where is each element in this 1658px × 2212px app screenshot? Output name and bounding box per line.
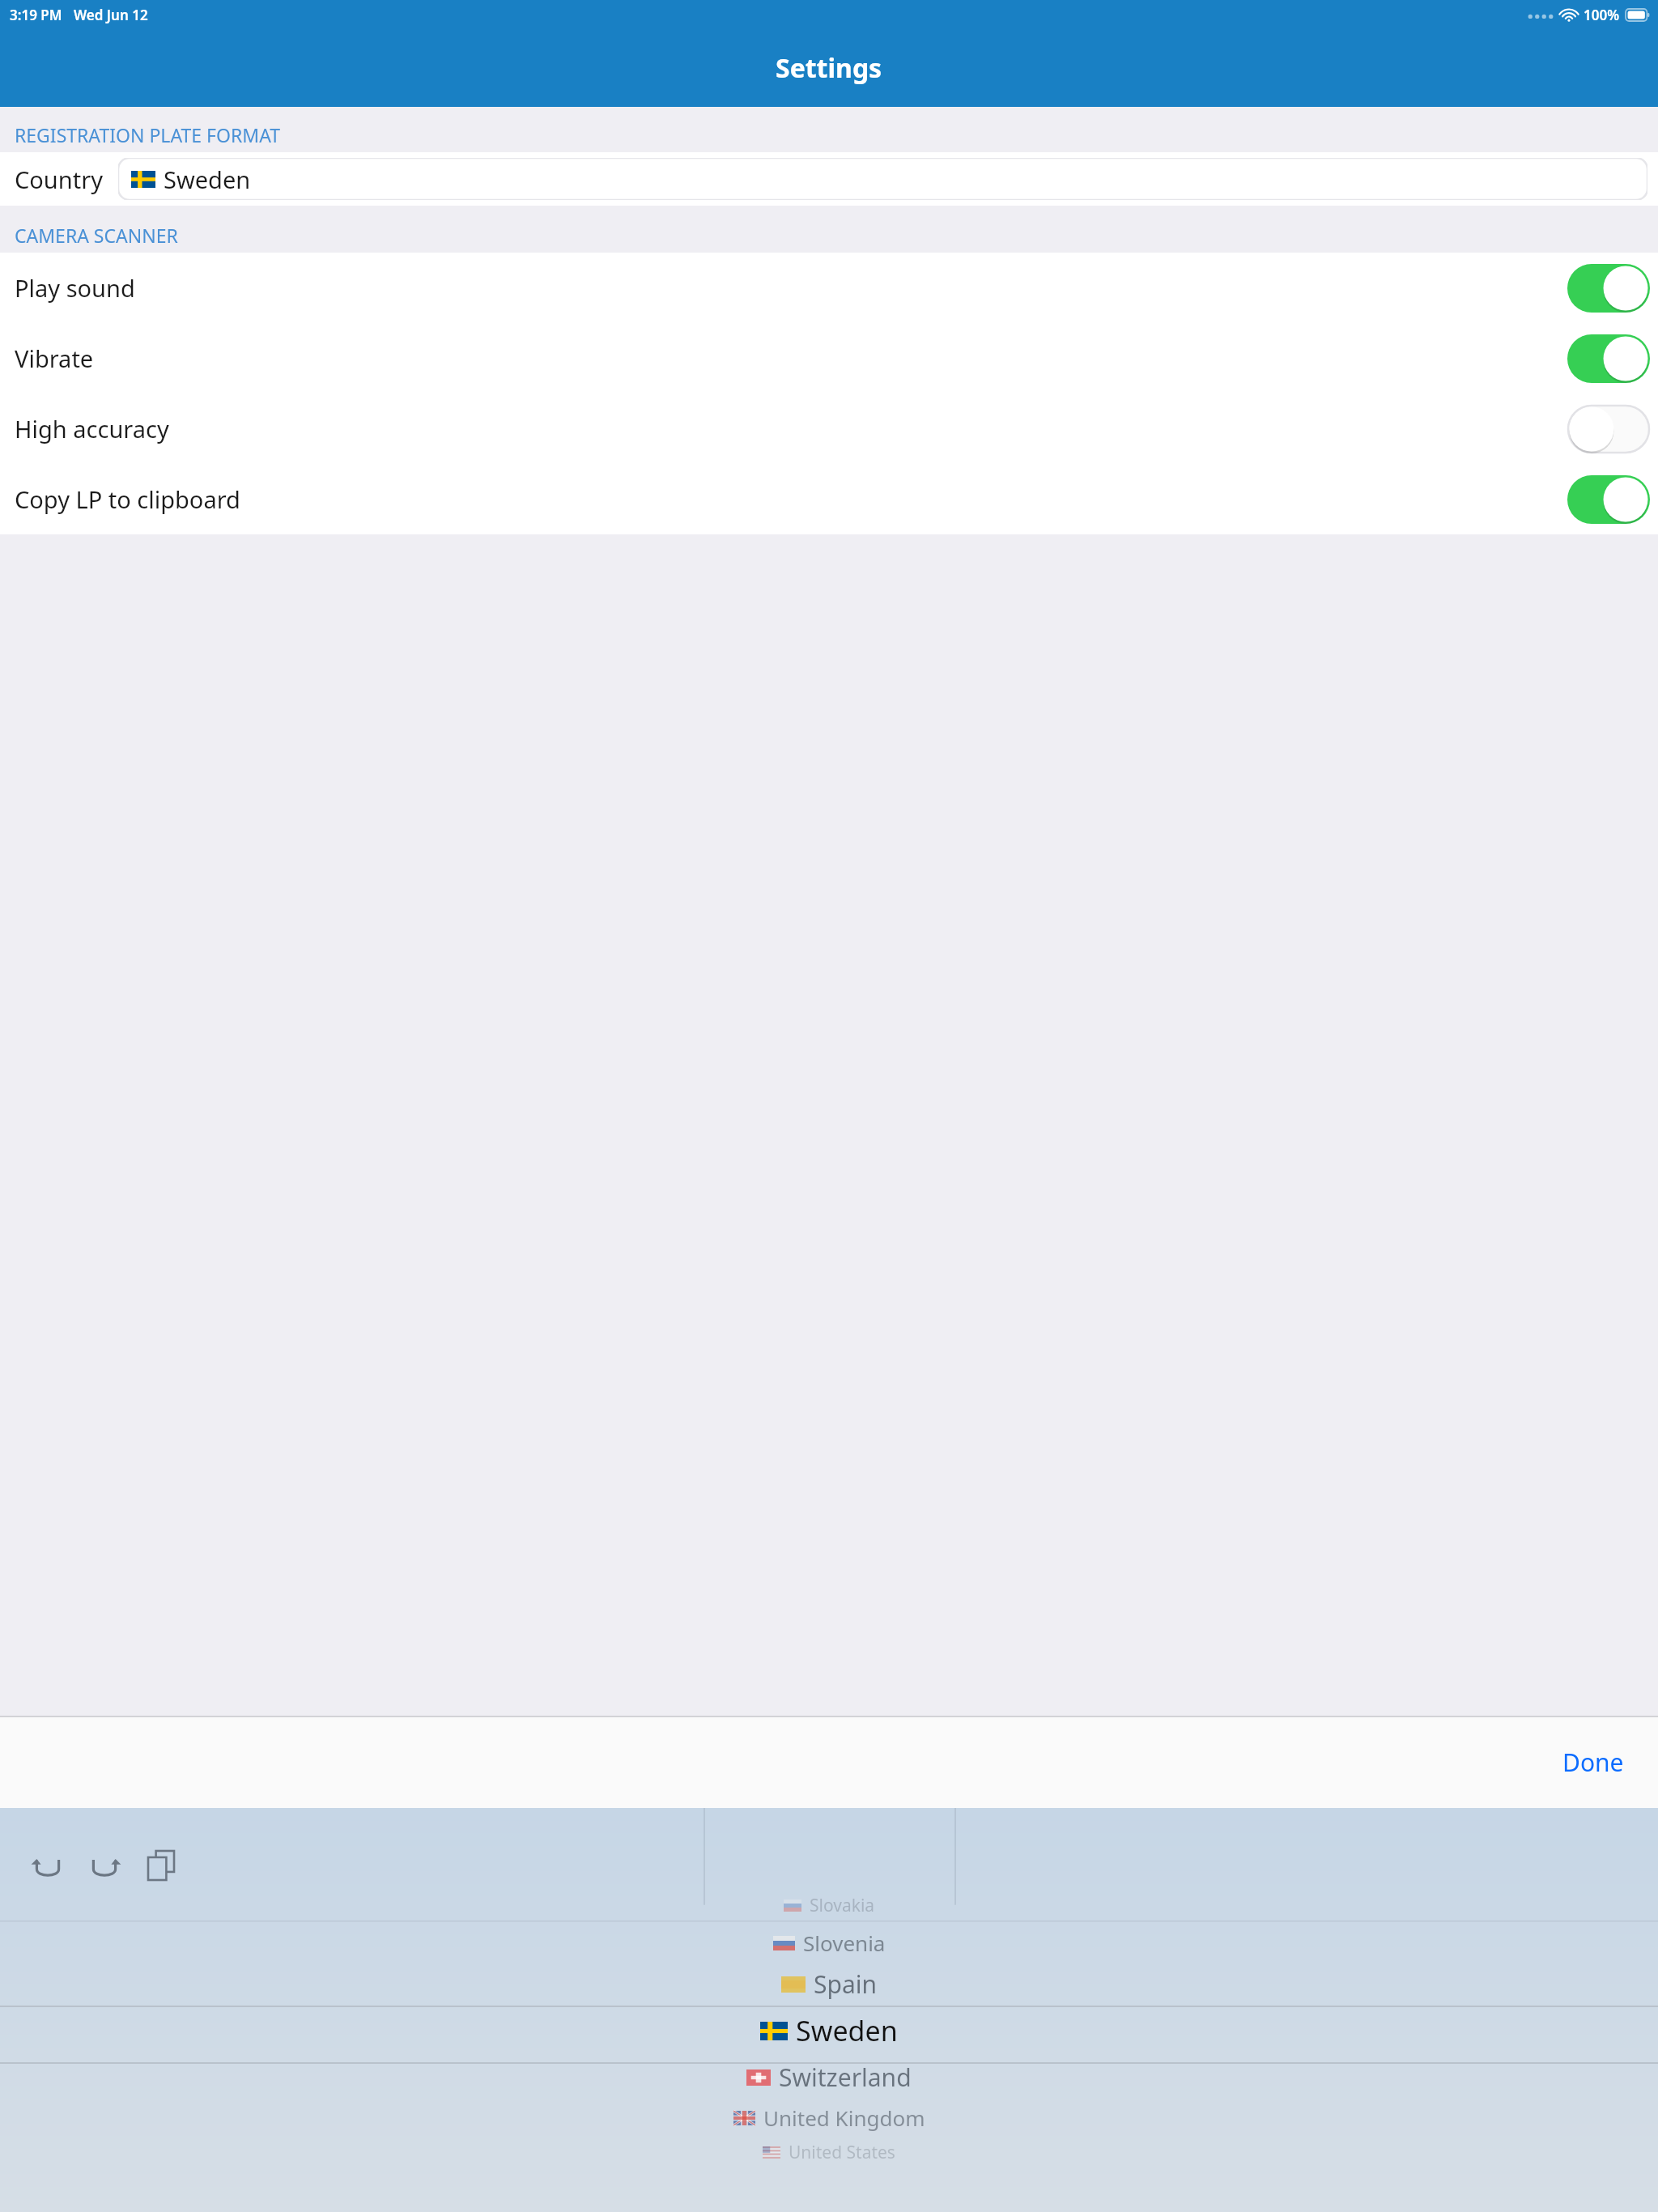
staticText: Slovenia — [803, 1929, 886, 1957]
button[interactable]: Vibrate — [0, 323, 1658, 393]
staticText: Switzerland — [779, 2061, 912, 2094]
staticText: REGISTRATION PLATE FORMAT — [15, 122, 281, 147]
staticText: Slovakia — [810, 1894, 875, 1917]
staticText: Play sound — [15, 272, 1567, 304]
staticText: Copy LP to clipboard — [15, 483, 1567, 515]
button[interactable]: Switzerland — [0, 2061, 1658, 2094]
button[interactable]: Slovenia — [0, 1929, 1658, 1957]
staticText: 100% — [1584, 6, 1620, 24]
button[interactable]: Slovakia — [0, 1894, 1658, 1917]
button[interactable]: Vibrate — [1567, 334, 1650, 383]
staticText: Sweden — [164, 164, 251, 195]
button[interactable]: Done — [1553, 1738, 1634, 1787]
staticText: High accuracy — [15, 413, 1567, 445]
staticText: Wed Jun 12 — [74, 6, 148, 24]
staticText: United States — [789, 2141, 895, 2164]
button[interactable]: High accuracy — [0, 393, 1658, 464]
staticText: Sweden — [796, 2012, 898, 2049]
button[interactable]: High accuracy — [1567, 405, 1650, 453]
button[interactable]: Sweden — [118, 158, 1647, 200]
button[interactable]: Copy LP to clipboard — [0, 464, 1658, 534]
button[interactable]: Copy LP to clipboard — [1567, 475, 1650, 524]
staticText: CAMERA SCANNER — [15, 223, 178, 248]
button[interactable]: United States — [0, 2141, 1658, 2164]
staticText: Vibrate — [15, 342, 1567, 374]
staticText: United Kingdom — [763, 2104, 925, 2132]
button[interactable]: Redo — [79, 1840, 130, 1891]
staticText: Spain — [814, 1967, 878, 2001]
staticText: 3:19 PM — [10, 6, 62, 24]
staticText: Settings — [776, 50, 882, 86]
button[interactable]: Paste — [136, 1840, 186, 1891]
button[interactable]: Play sound — [1567, 264, 1650, 313]
staticText: Done — [1562, 1746, 1624, 1779]
button[interactable]: Country — [0, 152, 1658, 206]
button[interactable]: Play sound — [0, 253, 1658, 323]
button[interactable]: Spain — [0, 1967, 1658, 2001]
staticText: Country — [15, 164, 103, 195]
button[interactable]: Undo — [23, 1840, 73, 1891]
button[interactable]: Sweden — [0, 2012, 1658, 2049]
button[interactable]: United Kingdom — [0, 2104, 1658, 2132]
